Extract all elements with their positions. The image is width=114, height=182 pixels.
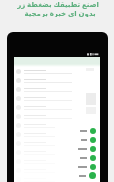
button[interactable]: [14, 157, 100, 166]
button[interactable]: Menu action: [55, 135, 100, 144]
other: Menu action: [90, 137, 96, 143]
staticText: اصنع تطبيقك بضغطة زر: [17, 0, 99, 9]
button[interactable]: [14, 94, 100, 103]
other: Menu action: [89, 172, 96, 179]
button[interactable]: [14, 130, 100, 139]
button[interactable]: [14, 166, 100, 175]
button[interactable]: [14, 67, 100, 76]
button[interactable]: [14, 85, 100, 94]
button[interactable]: [14, 139, 100, 148]
staticText: بدون اي خبرة برمجية: [24, 9, 96, 17]
other: Menu action: [90, 128, 96, 134]
button[interactable]: Menu action: [55, 162, 100, 171]
button[interactable]: [14, 103, 100, 112]
button[interactable]: Menu action: [55, 144, 100, 153]
button[interactable]: [14, 148, 100, 157]
button[interactable]: Menu action: [55, 171, 100, 180]
other: Menu action: [90, 164, 96, 170]
button[interactable]: [14, 112, 100, 121]
other: Menu action: [90, 146, 96, 152]
button[interactable]: [14, 76, 100, 85]
button[interactable]: Menu action: [55, 126, 100, 135]
other: Status icons: [87, 53, 99, 56]
other: Menu action: [90, 155, 96, 161]
button[interactable]: [14, 121, 100, 130]
button[interactable]: Menu action: [55, 153, 100, 162]
button[interactable]: [14, 175, 100, 182]
